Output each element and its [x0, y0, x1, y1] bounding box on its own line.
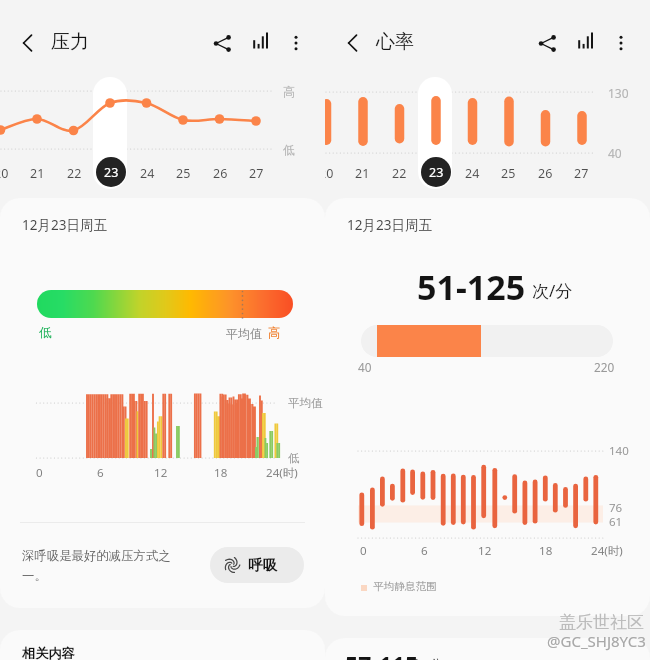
staticText: 24: [140, 165, 155, 182]
staticText: 次/分: [410, 655, 444, 660]
button[interactable]: 23: [421, 157, 451, 187]
staticText: 40: [608, 145, 622, 161]
staticText: 76: [609, 500, 623, 516]
button[interactable]: Statistics: [245, 26, 277, 58]
staticText: 深呼吸是最好的减压方式之 一。: [22, 548, 171, 584]
button[interactable]: 21: [348, 163, 376, 183]
button[interactable]: Statistics: [570, 26, 602, 58]
button[interactable]: 22: [385, 163, 413, 183]
button[interactable]: Share: [531, 27, 563, 59]
button[interactable]: 25: [494, 163, 522, 183]
staticText: 20: [0, 165, 9, 182]
button[interactable]: 20: [325, 163, 340, 183]
staticText: 平均静息范围: [373, 580, 437, 593]
staticText: 130: [608, 85, 629, 101]
button[interactable]: 26: [206, 163, 234, 183]
staticText: 21: [30, 165, 45, 182]
staticText: 12: [478, 543, 492, 559]
staticText: 呼吸: [248, 556, 277, 574]
staticText: 0: [360, 543, 367, 559]
button[interactable]: 27: [567, 163, 595, 183]
button[interactable]: 26: [531, 163, 559, 183]
staticText: 22: [392, 165, 407, 182]
staticText: 压力: [51, 30, 89, 54]
staticText: 18: [539, 543, 553, 559]
staticText: @GC_SHJ8YC3: [547, 631, 646, 651]
staticText: 平均值: [226, 326, 262, 341]
button[interactable]: 25: [169, 163, 197, 183]
staticText: 12月23日周五: [347, 216, 432, 234]
button[interactable]: 24: [133, 163, 161, 183]
staticText: 低: [288, 451, 300, 465]
button[interactable]: 23: [96, 157, 126, 187]
staticText: 0: [36, 465, 43, 481]
staticText: 24: [465, 165, 480, 182]
staticText: 6: [421, 543, 428, 559]
staticText: 220: [594, 359, 615, 375]
staticText: 27: [249, 165, 264, 182]
staticText: 24(时): [591, 543, 623, 559]
staticText: 次/分: [532, 279, 573, 302]
staticText: 25: [176, 165, 191, 182]
staticText: 27: [574, 165, 589, 182]
button[interactable]: 27: [242, 163, 270, 183]
staticText: 相关内容: [22, 645, 75, 660]
staticText: 盖乐世社区: [559, 612, 644, 633]
button[interactable]: 20: [0, 163, 15, 183]
staticText: 心率: [376, 30, 414, 54]
staticText: 24(时): [266, 465, 298, 481]
staticText: 51-125: [417, 264, 526, 310]
staticText: 20: [325, 165, 334, 182]
staticText: 61: [609, 514, 623, 530]
staticText: 57-115: [345, 649, 419, 660]
button[interactable]: 21: [23, 163, 51, 183]
staticText: 22: [67, 165, 82, 182]
staticText: 高: [283, 84, 295, 99]
staticText: 23: [429, 164, 444, 181]
staticText: 12月23日周五: [22, 216, 107, 234]
button[interactable]: More options: [280, 27, 312, 59]
staticText: 23: [104, 164, 119, 181]
button[interactable]: 呼吸: [210, 547, 304, 583]
staticText: 高: [268, 325, 281, 341]
button[interactable]: Back: [337, 27, 369, 59]
button[interactable]: More options: [605, 27, 637, 59]
staticText: 低: [39, 325, 52, 341]
staticText: 12: [154, 465, 168, 481]
button[interactable]: Share: [206, 27, 238, 59]
button[interactable]: 24: [458, 163, 486, 183]
staticText: 平均值: [288, 396, 323, 410]
staticText: 18: [214, 465, 228, 481]
staticText: 40: [358, 359, 372, 375]
staticText: 低: [283, 142, 295, 157]
staticText: 26: [213, 165, 228, 182]
staticText: 21: [355, 165, 370, 182]
button[interactable]: Back: [12, 27, 44, 59]
staticText: 6: [97, 465, 104, 481]
staticText: 25: [501, 165, 516, 182]
staticText: 140: [609, 443, 629, 459]
button[interactable]: 22: [60, 163, 88, 183]
staticText: 26: [538, 165, 553, 182]
